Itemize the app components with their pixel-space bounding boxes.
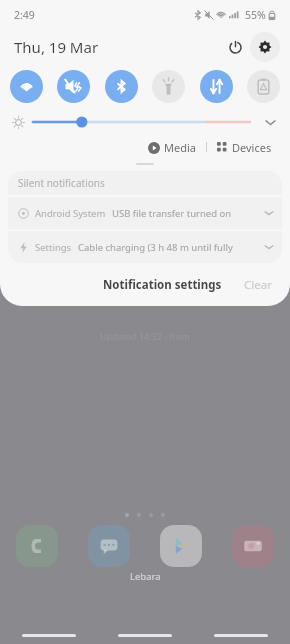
button[interactable]: Settings [250, 32, 280, 62]
staticText: USB file transfer turned on [112, 207, 232, 220]
staticText: Media [164, 140, 196, 155]
button[interactable]: Mobile data [200, 70, 233, 103]
button[interactable] [88, 525, 130, 567]
button[interactable]: Devices [215, 140, 274, 155]
staticText: Android System [35, 207, 106, 220]
staticText: Devices [232, 140, 272, 155]
button[interactable]: Expand [260, 112, 280, 132]
staticText: 2:49 [14, 8, 35, 22]
button[interactable]: Wi-Fi [10, 70, 43, 103]
staticText: Cable charging (3 h 48 m until fully cha… [78, 241, 264, 254]
button[interactable]: Clear [240, 273, 276, 297]
staticText: Lebara [130, 570, 161, 583]
staticText: 55% [245, 8, 266, 22]
staticText: Notification settings [103, 277, 222, 293]
button[interactable] [16, 525, 58, 567]
button[interactable]: Power saving [247, 70, 280, 103]
staticText: Clear [244, 277, 272, 293]
button[interactable] [160, 525, 202, 567]
button[interactable]: Notification settings [97, 273, 228, 297]
staticText: Settings [35, 241, 72, 254]
button[interactable] [232, 525, 274, 567]
button[interactable]: Sound off [57, 70, 90, 103]
button[interactable]: Android System [8, 197, 282, 229]
staticText: Silent notifications [18, 176, 105, 190]
button[interactable]: Settings [8, 231, 282, 263]
button[interactable]: Flashlight [152, 70, 185, 103]
button[interactable]: Power off [222, 34, 248, 60]
button[interactable]: Media [146, 140, 198, 155]
button[interactable]: Bluetooth [105, 70, 138, 103]
staticText: Thu, 19 Mar [14, 37, 99, 57]
staticText: Updated 14:32 - from [100, 330, 190, 342]
